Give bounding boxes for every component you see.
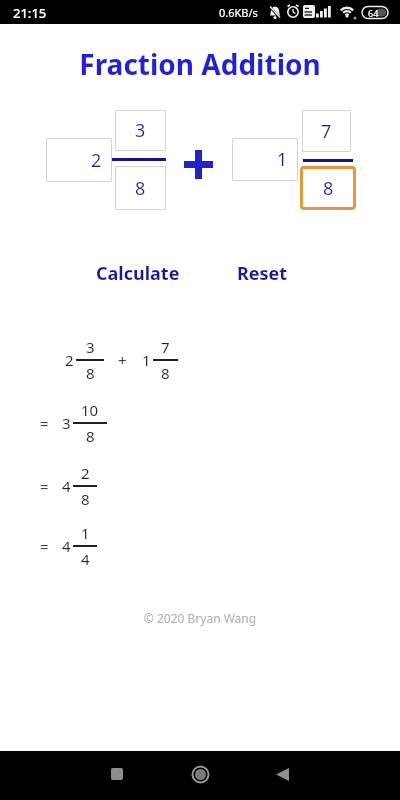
button[interactable]: Calculate — [90, 255, 185, 291]
staticText: 2 — [81, 463, 90, 483]
staticText: 3 — [135, 118, 146, 143]
button[interactable]: 1 — [232, 138, 298, 181]
staticText: 1 — [81, 523, 90, 543]
staticText: Fraction Addition — [0, 45, 400, 83]
staticText: 4 — [81, 549, 90, 569]
button[interactable]: 3 — [115, 110, 166, 151]
staticText: 7 — [161, 337, 170, 357]
staticText: = — [40, 413, 49, 433]
staticText: 8 — [323, 176, 334, 201]
staticText: 3 — [62, 413, 71, 433]
button[interactable] — [263, 755, 301, 793]
staticText: = — [40, 476, 49, 496]
staticText: 8 — [135, 176, 146, 201]
staticText: 4 — [62, 536, 71, 556]
staticText: 4 — [62, 476, 71, 496]
button[interactable]: 7 — [302, 110, 351, 152]
staticText: = — [40, 536, 49, 556]
staticText: 8 — [86, 363, 95, 383]
staticText: + — [118, 350, 127, 370]
staticText: 7 — [321, 119, 332, 144]
staticText: 21:15 — [13, 4, 47, 22]
button[interactable]: 8 — [300, 166, 356, 210]
button[interactable]: 2 — [46, 138, 112, 182]
staticText: 2 — [65, 350, 74, 370]
staticText: 2 — [91, 148, 102, 173]
staticText: 1 — [142, 350, 151, 370]
staticText: 8 — [81, 489, 90, 509]
staticText: Calculate — [96, 261, 180, 286]
button[interactable]: 8 — [115, 166, 166, 210]
staticText: 8 — [86, 426, 95, 446]
staticText: 10 — [81, 400, 99, 420]
button[interactable] — [181, 755, 219, 793]
staticText: 8 — [161, 363, 170, 383]
staticText: Reset — [237, 261, 288, 286]
staticText: 0.6KB/s — [219, 5, 258, 20]
button[interactable] — [98, 755, 136, 793]
staticText: 1 — [277, 147, 288, 172]
staticText: © 2020 Bryan Wang — [0, 610, 400, 626]
button[interactable]: Reset — [228, 255, 296, 291]
staticText: 3 — [86, 337, 95, 357]
staticText: 64 — [368, 7, 379, 19]
